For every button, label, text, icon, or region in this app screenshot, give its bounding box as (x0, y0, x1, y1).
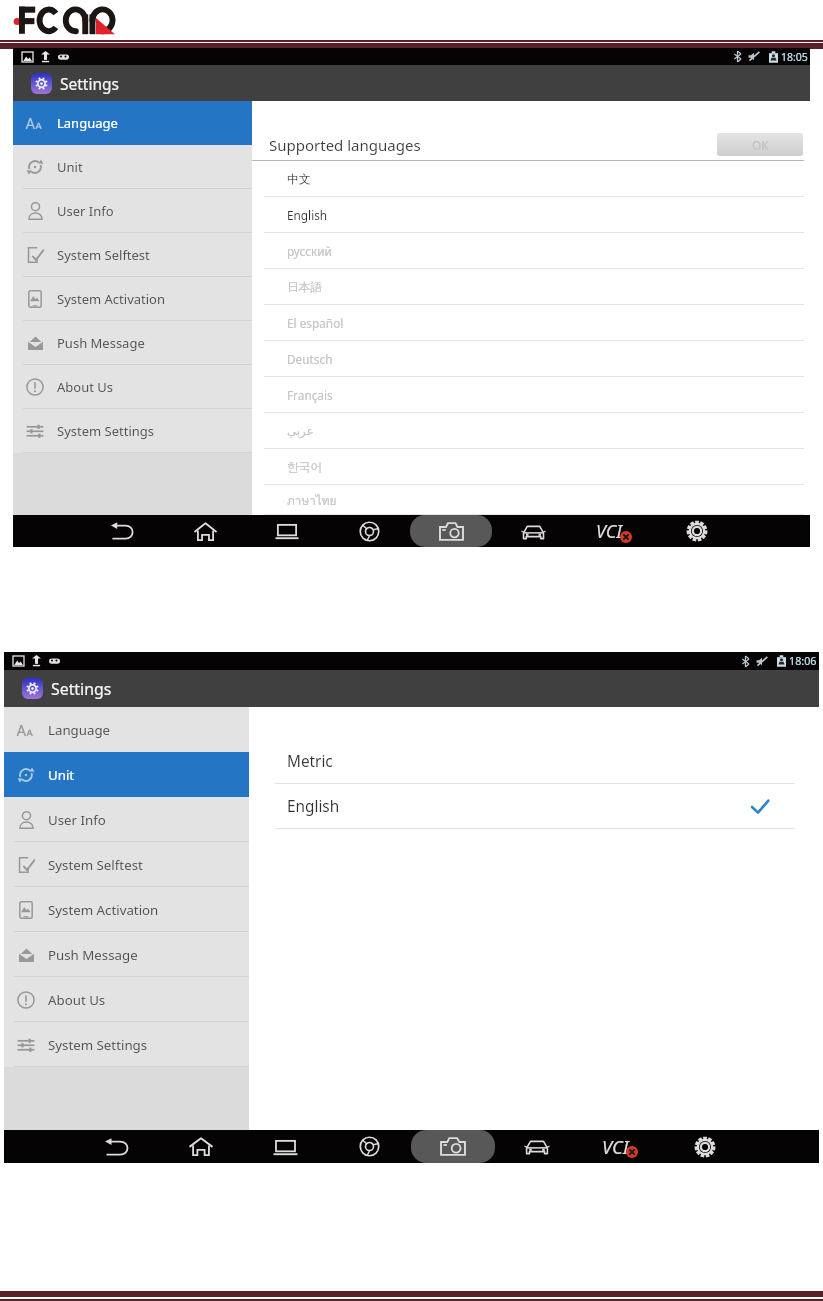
staticText: русский (287, 243, 332, 259)
button[interactable]: About Us (13, 365, 252, 409)
staticText: English (287, 207, 328, 223)
button[interactable]: English (275, 784, 795, 829)
staticText: User Info (57, 202, 114, 220)
staticText: Français (287, 387, 333, 403)
button[interactable]: User Info (4, 797, 249, 842)
staticText: Unit (57, 158, 83, 176)
staticText: 日本語 (287, 280, 323, 295)
button[interactable]: OK (717, 133, 803, 156)
staticText: Supported languages (269, 135, 421, 155)
staticText: Language (57, 114, 118, 132)
staticText: 18:05 (781, 50, 808, 64)
button[interactable]: Vehicle (495, 1130, 579, 1163)
button[interactable]: System Selftest (4, 842, 249, 887)
button[interactable]: Browser (327, 1130, 411, 1163)
button[interactable]: Recent apps (246, 515, 328, 547)
button[interactable]: System Activation (4, 887, 249, 932)
staticText: System Activation (57, 290, 165, 308)
staticText: Deutsch (287, 351, 333, 367)
staticText: Unit (48, 766, 75, 784)
staticText: Settings (51, 678, 112, 700)
staticText: System Settings (48, 1036, 148, 1054)
button[interactable]: Language (13, 101, 252, 145)
button[interactable]: Push Message (4, 932, 249, 977)
staticText: Language (48, 721, 111, 739)
button[interactable]: Home (159, 1130, 243, 1163)
button[interactable]: System Activation (13, 277, 252, 321)
staticText: Push Message (57, 334, 145, 352)
staticText: VCI (596, 519, 623, 544)
button[interactable]: 中文 (252, 161, 810, 197)
staticText: About Us (48, 991, 106, 1009)
staticText: About Us (57, 378, 114, 396)
button[interactable]: русский (252, 233, 810, 269)
button[interactable]: Home (164, 515, 246, 547)
button[interactable]: Back (82, 515, 164, 547)
button[interactable]: 한국어 (252, 449, 810, 485)
button[interactable]: Browser (328, 515, 410, 547)
staticText: System Activation (48, 901, 159, 919)
staticText: Settings (60, 73, 119, 94)
staticText: 한국어 (287, 460, 323, 475)
staticText: System Settings (57, 422, 155, 440)
button[interactable]: Settings (656, 515, 738, 547)
button[interactable]: Français (252, 377, 810, 413)
button[interactable]: Screenshot (411, 1130, 495, 1163)
staticText: VCI (602, 1134, 629, 1159)
button[interactable]: About Us (4, 977, 249, 1022)
staticText: English (287, 796, 340, 817)
button[interactable]: Back (75, 1130, 159, 1163)
button[interactable]: User Info (13, 189, 252, 233)
staticText: عربي (287, 424, 314, 438)
button[interactable]: Deutsch (252, 341, 810, 377)
button[interactable]: Settings (663, 1130, 747, 1163)
staticText: 18:06 (789, 654, 817, 669)
button[interactable]: Metric (275, 739, 795, 784)
button[interactable]: عربي (252, 413, 810, 449)
button[interactable]: System Settings (4, 1022, 249, 1067)
staticText: User Info (48, 811, 106, 829)
button[interactable]: Unit (4, 752, 249, 797)
staticText: OK (752, 137, 769, 153)
button[interactable]: Language (4, 707, 249, 752)
button[interactable]: El español (252, 305, 810, 341)
button[interactable]: System Settings (13, 409, 252, 453)
staticText: System Selftest (48, 856, 143, 874)
button[interactable]: Recent apps (243, 1130, 327, 1163)
button[interactable]: Screenshot (410, 515, 492, 547)
staticText: El español (287, 315, 344, 331)
button[interactable]: ภาษาไทย (252, 485, 810, 515)
button[interactable]: 日本語 (252, 269, 810, 305)
button[interactable]: VCI (579, 1130, 663, 1163)
button[interactable]: VCI (574, 515, 656, 547)
button[interactable]: English (252, 197, 810, 233)
staticText: Push Message (48, 946, 138, 964)
button[interactable]: System Selftest (13, 233, 252, 277)
button[interactable]: Vehicle (492, 515, 574, 547)
button[interactable]: Push Message (13, 321, 252, 365)
staticText: 中文 (287, 172, 311, 187)
staticText: Metric (287, 751, 333, 772)
staticText: ภาษาไทย (287, 491, 337, 510)
button[interactable]: Unit (13, 145, 252, 189)
staticText: System Selftest (57, 246, 150, 264)
